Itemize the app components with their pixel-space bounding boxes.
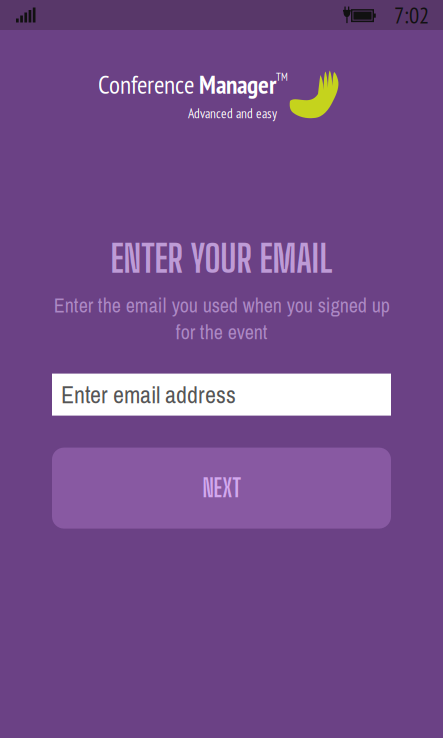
button[interactable]: NEXT xyxy=(52,448,391,529)
staticText: 7:02 xyxy=(394,0,429,30)
staticText: ENTER YOUR EMAIL xyxy=(110,236,332,281)
staticText: Enter the email you used when you signed… xyxy=(53,292,389,346)
staticText: Enter email address xyxy=(61,378,236,411)
staticText: NEXT xyxy=(202,474,240,502)
staticText: TM xyxy=(276,70,288,84)
staticText: Conference xyxy=(98,68,199,101)
staticText: Manager xyxy=(199,68,276,101)
staticText: Advanced and easy xyxy=(188,105,277,122)
